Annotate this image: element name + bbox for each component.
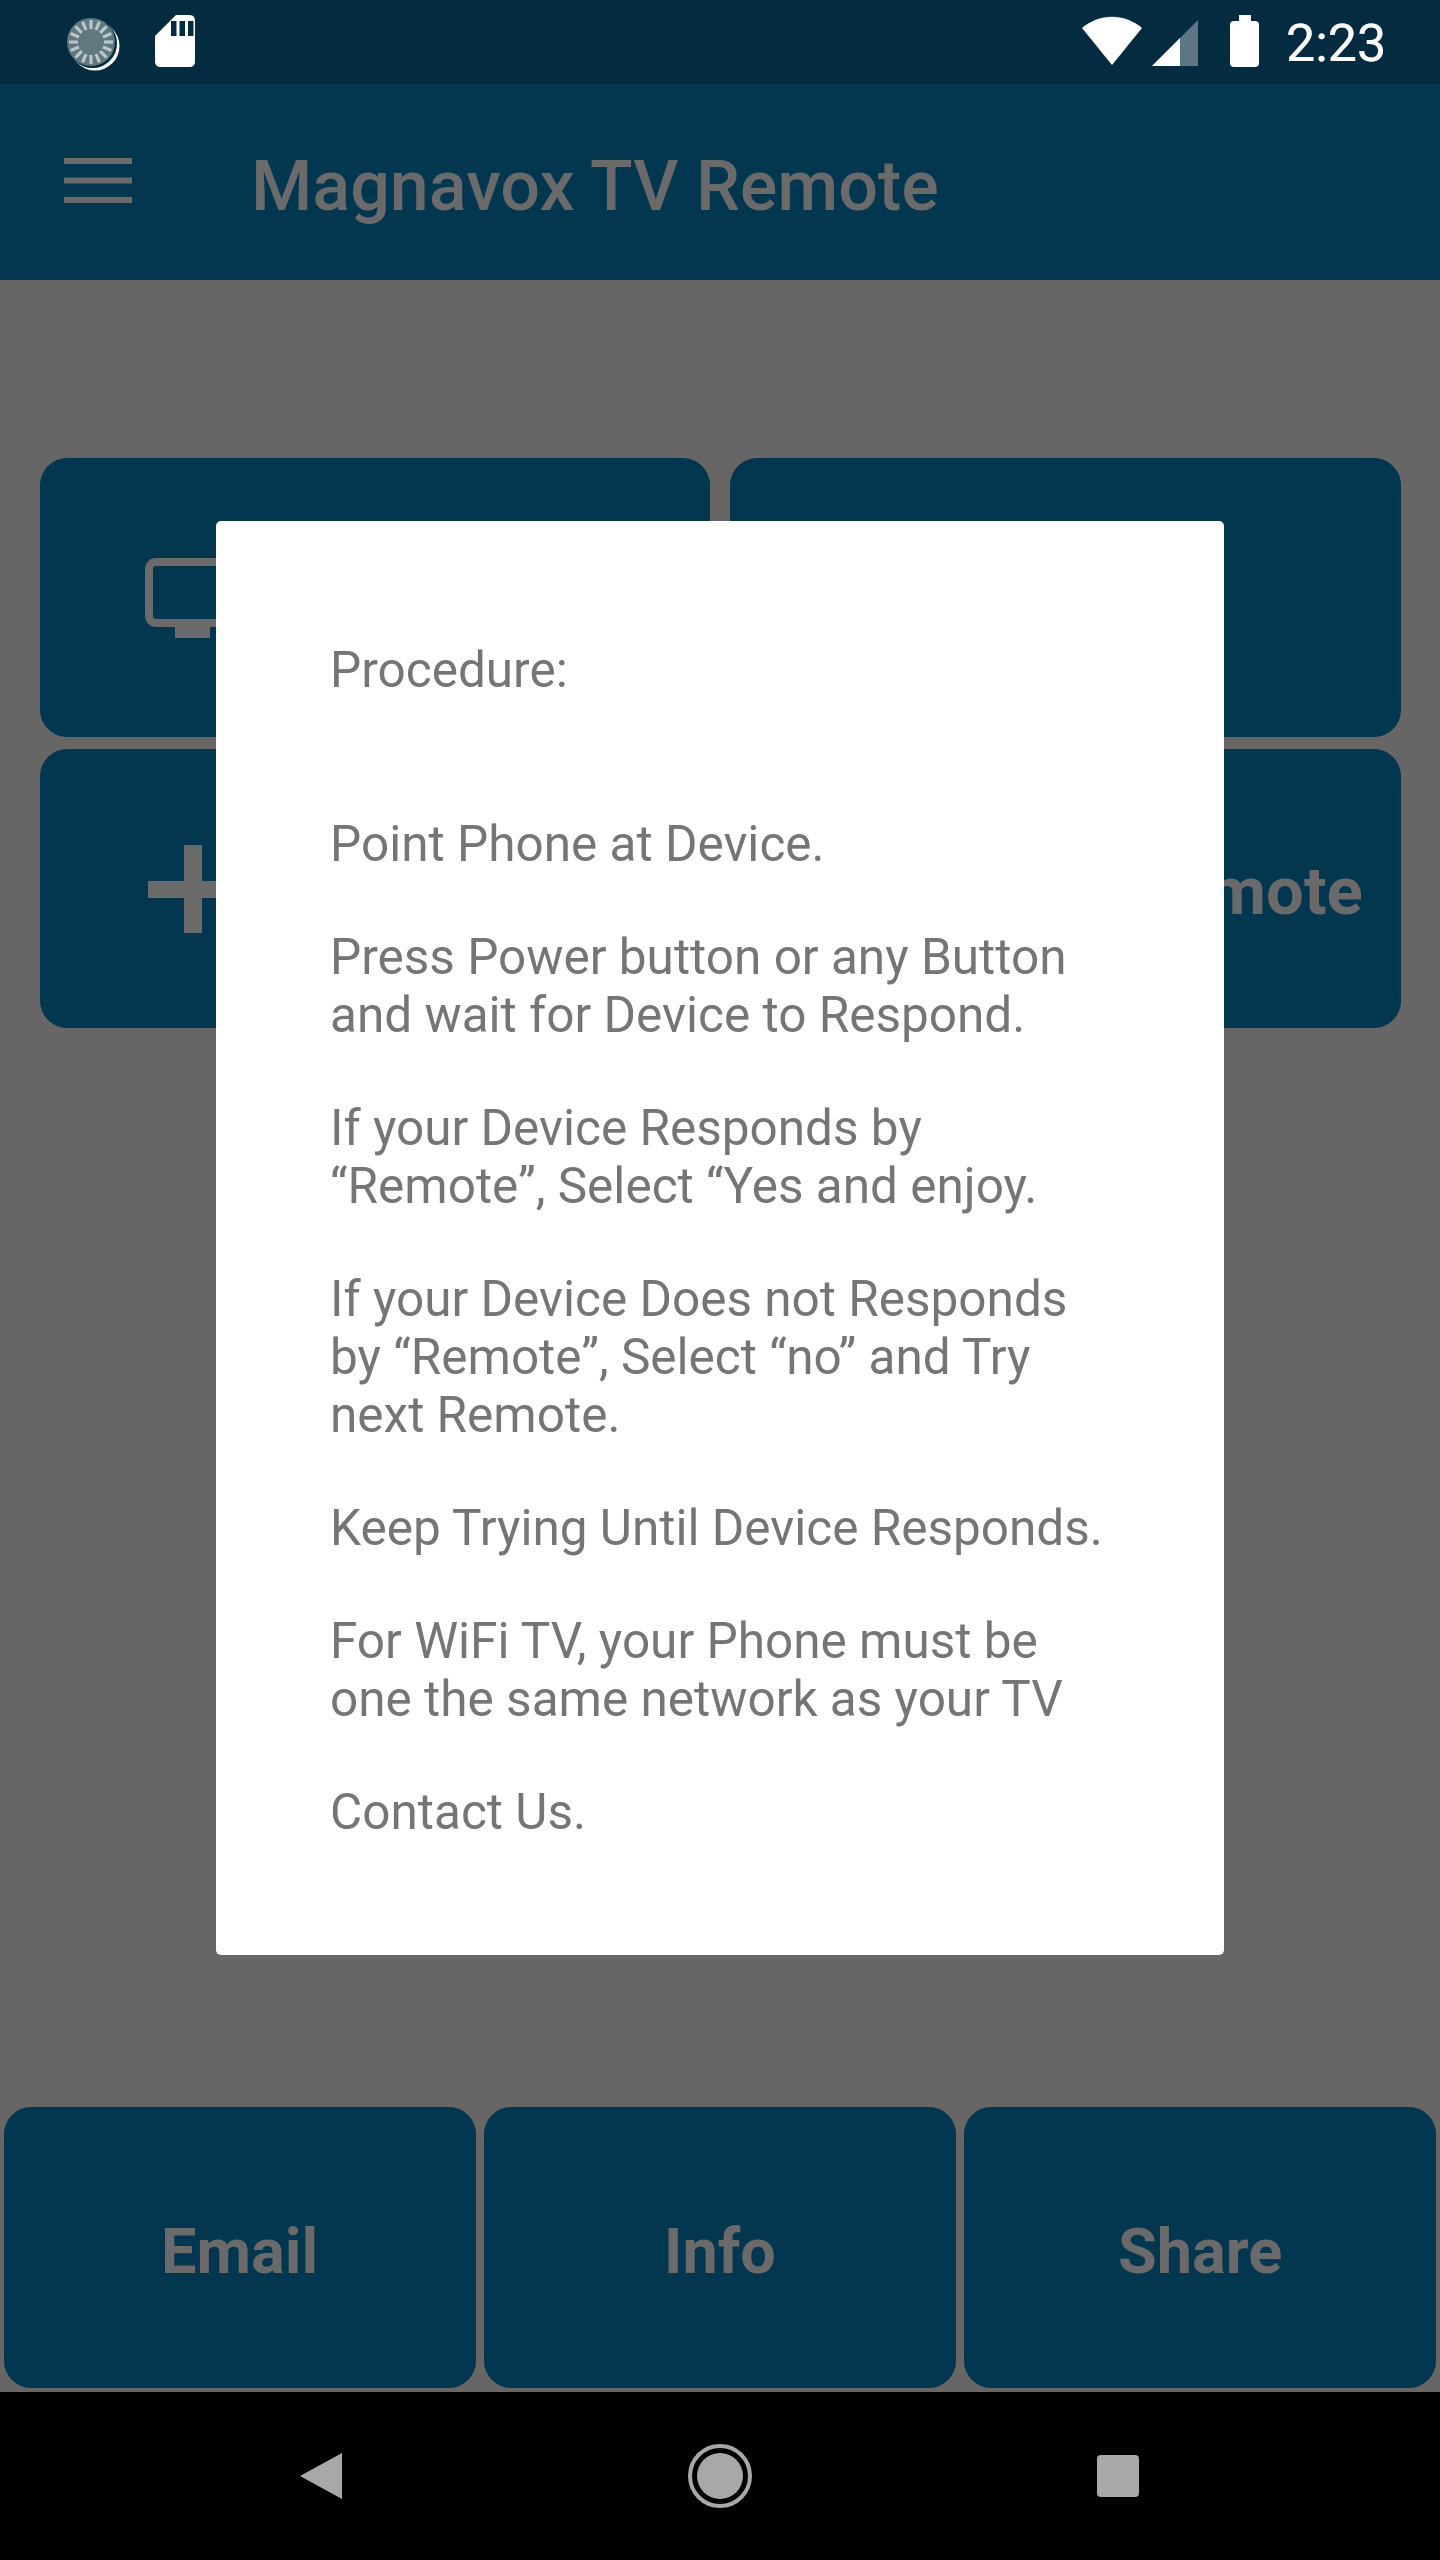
- button[interactable]: Add Remote: [40, 749, 710, 1028]
- button[interactable]: Open navigation drawer: [34, 116, 162, 244]
- staticText: Keep Trying Until Device Responds.: [330, 1499, 1103, 1557]
- button[interactable]: WiFi Remote: [730, 458, 1401, 737]
- staticText: Share: [1118, 2215, 1283, 2289]
- staticText: If your Device Responds by “Remote”, Sel…: [330, 1099, 1038, 1215]
- button[interactable]: Back: [241, 2396, 401, 2556]
- staticText: Procedure:: [330, 641, 568, 699]
- staticText: Contact Us.: [330, 1783, 586, 1841]
- staticText: If your Device Does not Responds by “Rem…: [330, 1270, 1068, 1444]
- staticText: Email: [161, 2215, 319, 2289]
- button[interactable]: Home: [640, 2396, 800, 2556]
- staticText: Info: [664, 2215, 776, 2289]
- button[interactable]: Learn Remote: [730, 749, 1401, 1028]
- staticText: Point Phone at Device.: [330, 815, 825, 873]
- staticText: Press Power button or any Button and wai…: [330, 928, 1067, 1044]
- staticText: Add: [268, 849, 389, 928]
- staticText: For WiFi TV, your Phone must be one the …: [330, 1612, 1063, 1728]
- button[interactable]: Share: [964, 2107, 1436, 2388]
- staticText: Learn Remote: [942, 852, 1363, 931]
- button[interactable]: Email: [4, 2107, 476, 2388]
- button[interactable]: Recent apps: [1038, 2396, 1198, 2556]
- button[interactable]: Info: [484, 2107, 956, 2388]
- staticText: Magnavox TV Remote: [251, 145, 939, 227]
- staticText: 2:23: [1286, 13, 1387, 74]
- button[interactable]: TV Remote: [40, 458, 710, 737]
